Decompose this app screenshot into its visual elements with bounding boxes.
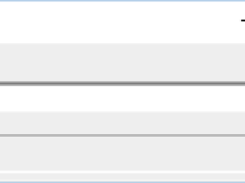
button[interactable]: Second item bbox=[0, 111, 245, 135]
button[interactable]: First item bbox=[0, 42, 245, 86]
button[interactable]: App bar bbox=[0, 0, 245, 42]
button[interactable]: More options bbox=[239, 19, 245, 22]
button[interactable]: Bottom bar bbox=[0, 170, 245, 183]
button[interactable]: Third item bbox=[0, 135, 245, 170]
